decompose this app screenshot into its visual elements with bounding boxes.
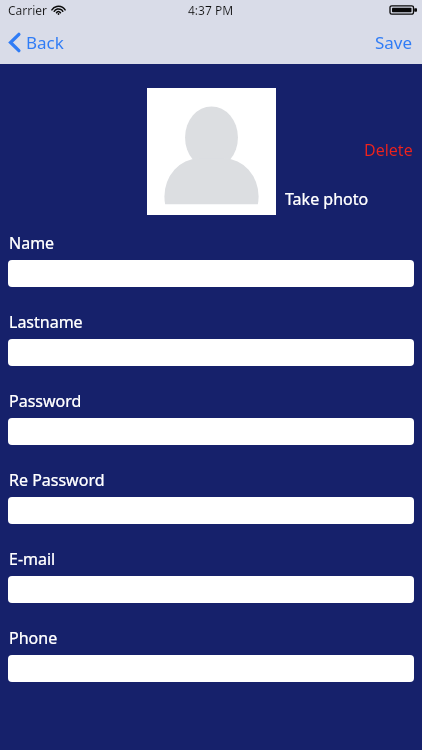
staticText: Re Password [9, 469, 105, 491]
staticText: Name [9, 232, 55, 254]
staticText: E-mail [9, 548, 56, 570]
staticText: Delete [364, 139, 413, 161]
button[interactable]: Back [0, 23, 76, 62]
button[interactable]: Re Password [8, 497, 414, 524]
button[interactable]: Lastname [8, 339, 414, 366]
staticText: 4:37 PM [188, 2, 234, 18]
staticText: Take photo [285, 188, 369, 210]
button[interactable]: Take photo [285, 188, 369, 210]
staticText: Password [9, 390, 82, 412]
staticText: Save [375, 31, 413, 54]
button[interactable]: Take photo [147, 88, 276, 215]
staticText: Phone [9, 627, 58, 649]
staticText: Carrier [8, 2, 48, 18]
button[interactable]: Name [8, 260, 414, 287]
button[interactable]: Password [8, 418, 414, 445]
button[interactable]: Phone [8, 655, 414, 682]
staticText: Lastname [9, 311, 83, 333]
button[interactable]: Delete [354, 136, 422, 164]
button[interactable]: Save [366, 23, 422, 62]
staticText: Back [26, 31, 64, 54]
button[interactable]: E-mail [8, 576, 414, 603]
